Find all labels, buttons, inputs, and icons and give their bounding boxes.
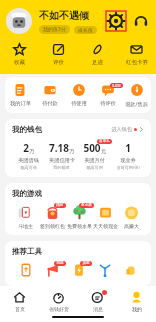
staticText: 免费领水果 bbox=[67, 223, 92, 229]
button[interactable]: 2 bbox=[12, 141, 45, 170]
staticText: 我的订单 bbox=[10, 100, 31, 107]
button[interactable]: Avatar bbox=[6, 8, 32, 34]
staticText: 我的钱包 bbox=[12, 125, 42, 134]
staticText: 我的游戏 bbox=[12, 189, 42, 198]
button[interactable]: 有水果 bbox=[66, 204, 92, 229]
button[interactable]: 7.18 bbox=[45, 141, 78, 170]
button[interactable]: 斗地主 bbox=[12, 204, 39, 229]
staticText: 我的额度 bbox=[53, 165, 70, 170]
button[interactable]: 招聘/ bbox=[118, 262, 144, 280]
button[interactable]: 5.0万 bbox=[93, 83, 122, 107]
staticText: 红包卡券 bbox=[126, 59, 148, 66]
button[interactable]: 首页 bbox=[0, 291, 39, 312]
button[interactable]: 加盟 bbox=[66, 262, 92, 280]
staticText: 待使用 bbox=[71, 100, 87, 107]
staticText: 限时 bbox=[56, 203, 64, 208]
staticText: 待付款 bbox=[42, 100, 58, 107]
staticText: 7.18 bbox=[49, 141, 69, 155]
staticText: 1 bbox=[125, 141, 131, 155]
staticText: 不如不遇倾 bbox=[39, 9, 89, 22]
button[interactable]: 我的 bbox=[117, 291, 156, 312]
button[interactable]: 充值中心 bbox=[12, 262, 39, 280]
staticText: 加盟 bbox=[82, 261, 90, 266]
staticText: 最高可借 bbox=[20, 165, 37, 170]
button[interactable]: 我的订单 bbox=[5, 83, 35, 107]
staticText: 进入钱包 bbox=[111, 126, 132, 133]
staticText: 签到领红包 bbox=[40, 223, 65, 229]
button[interactable]: 高赚大 bbox=[118, 204, 144, 229]
button[interactable]: 我的值3分 bbox=[39, 25, 70, 34]
button[interactable]: 限时 bbox=[39, 204, 66, 229]
staticText: 我的 bbox=[132, 306, 142, 312]
staticText: 万 bbox=[29, 148, 34, 154]
staticText: 500 bbox=[83, 141, 101, 155]
staticText: 美团借钱 bbox=[18, 157, 39, 164]
button[interactable]: 评价 bbox=[39, 43, 78, 66]
staticText: 斗地主 bbox=[18, 223, 33, 229]
staticText: 退款/售后 bbox=[125, 100, 148, 107]
staticText: 元 bbox=[101, 148, 106, 154]
staticText: 2 bbox=[23, 141, 29, 155]
button[interactable]: 省钱好货 bbox=[39, 291, 78, 312]
staticText: 消息 bbox=[93, 306, 103, 312]
button[interactable]: 收藏 bbox=[0, 43, 39, 66]
staticText: 美团信用卡 bbox=[49, 157, 75, 164]
staticText: 我的值3分 bbox=[43, 26, 66, 33]
button[interactable]: 电信营业厅 bbox=[92, 262, 118, 280]
staticText: 首页 bbox=[15, 306, 25, 312]
staticText: 万 bbox=[69, 148, 74, 154]
button[interactable]: 消息 bbox=[78, 291, 117, 312]
button[interactable]: 进入钱包 bbox=[111, 126, 144, 133]
staticText: 首单礼 bbox=[99, 139, 110, 144]
staticText: 现金券 bbox=[120, 157, 136, 164]
staticText: 待评价 bbox=[100, 100, 116, 107]
staticText: 高赚大 bbox=[124, 223, 139, 229]
staticText: 当前可用(张) bbox=[116, 165, 140, 171]
staticText: 省钱好货 bbox=[49, 306, 69, 312]
button[interactable]: 待使用 bbox=[64, 83, 93, 107]
staticText: 最高可用 bbox=[86, 165, 103, 170]
button[interactable]: 成长值 bbox=[74, 26, 97, 34]
staticText: 评价 bbox=[53, 59, 64, 66]
staticText: 收藏 bbox=[14, 59, 25, 66]
button[interactable]: 500 bbox=[78, 141, 111, 170]
button[interactable]: Settings bbox=[106, 11, 126, 31]
staticText: 推荐工具 bbox=[12, 247, 42, 256]
staticText: 足迹 bbox=[92, 59, 103, 66]
button[interactable]: 足迹 bbox=[78, 43, 117, 66]
button[interactable]: 天天领现金 bbox=[92, 204, 118, 229]
staticText: 有水果 bbox=[81, 203, 92, 208]
button[interactable]: 招募 bbox=[39, 262, 66, 280]
button[interactable]: 红包卡券 bbox=[117, 43, 156, 66]
staticText: 成长值 bbox=[78, 27, 93, 33]
button[interactable]: 1 bbox=[111, 141, 144, 171]
staticText: 天天领现金 bbox=[93, 223, 118, 229]
button[interactable]: 退款/售后 bbox=[122, 83, 151, 107]
staticText: 5.0万 bbox=[112, 83, 121, 88]
staticText: 招募 bbox=[56, 261, 64, 266]
button[interactable]: 待付款 bbox=[35, 83, 64, 107]
button[interactable]: Customer service bbox=[132, 12, 150, 30]
staticText: 美团月付 bbox=[84, 157, 105, 164]
